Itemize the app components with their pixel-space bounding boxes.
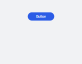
button[interactable]: Button [28, 12, 54, 21]
staticText: Button [36, 14, 46, 19]
